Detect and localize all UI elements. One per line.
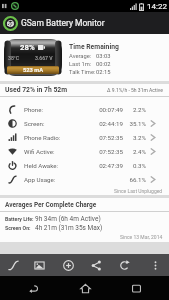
- button[interactable]: Held Awake:: [0, 158, 169, 172]
- staticText: Phone Radio:: [24, 134, 61, 141]
- staticText: Talk Time:: [69, 69, 96, 76]
- staticText: Δ 9.1%/h - 5h 31m Active: [107, 87, 163, 93]
- staticText: 14:22: [147, 2, 167, 11]
- button[interactable]: Add: [57, 254, 79, 276]
- button[interactable]: More options: [144, 254, 166, 276]
- staticText: 03:03: [96, 53, 111, 60]
- staticText: GSam Battery Monitor: [21, 18, 105, 28]
- button[interactable]: Wifi Active:: [0, 144, 169, 158]
- staticText: 2.4%: [120, 148, 146, 155]
- button[interactable]: App Usage:: [0, 172, 169, 186]
- staticText: Held Awake:: [24, 162, 59, 169]
- button[interactable]: Recents: [117, 276, 155, 300]
- staticText: 3.2%: [120, 134, 146, 141]
- staticText: Last 1m:: [69, 61, 92, 68]
- button[interactable]: Phone Radio:: [0, 130, 169, 144]
- staticText: 0.3%: [120, 162, 146, 169]
- staticText: Time Remaining: [69, 43, 119, 51]
- staticText: Battery Life:: [5, 216, 34, 222]
- staticText: 9h 34m (6h 4m Active): [35, 215, 101, 223]
- staticText: 07:52:35: [83, 134, 123, 141]
- staticText: Screen:: [24, 120, 45, 127]
- staticText: 00:02: [96, 61, 111, 68]
- staticText: 02:47:39: [83, 162, 123, 169]
- staticText: Since Last Unplugged: [114, 188, 163, 194]
- staticText: 2.2%: [120, 106, 146, 113]
- staticText: 4h 21m (31m 35s Max): [35, 224, 103, 232]
- button[interactable]: Home: [66, 276, 104, 300]
- staticText: Used 72% in 7h 52m: [5, 86, 68, 94]
- staticText: Wifi Active:: [24, 148, 55, 155]
- button[interactable]: Screenshot: [28, 254, 50, 276]
- staticText: 523 mA: [23, 67, 44, 74]
- button[interactable]: Refresh: [113, 254, 135, 276]
- button[interactable]: Screen:: [0, 116, 169, 130]
- button[interactable]: Back: [14, 276, 52, 300]
- staticText: 38°C: [8, 55, 20, 61]
- staticText: 35.1%: [120, 120, 146, 127]
- staticText: 07:52:35: [83, 148, 123, 155]
- staticText: 3.667 V: [35, 55, 53, 61]
- staticText: Screen On:: [5, 225, 31, 231]
- staticText: Since 13 Mar, 2014: [120, 234, 163, 240]
- staticText: Phone:: [24, 106, 44, 113]
- staticText: 00:07:49: [83, 106, 123, 113]
- staticText: App Usage:: [24, 176, 56, 183]
- staticText: Average:: [69, 53, 92, 60]
- staticText: 02:44:19: [83, 120, 123, 127]
- button[interactable]: Graph: [2, 254, 24, 276]
- staticText: 28%: [20, 43, 35, 52]
- staticText: 02:15: [96, 69, 111, 76]
- staticText: Averages Per Complete Charge: [5, 201, 97, 209]
- button[interactable]: Share: [85, 254, 107, 276]
- staticText: 66.1%: [120, 176, 146, 183]
- staticText: 50: [7, 21, 14, 27]
- button[interactable]: Phone:: [0, 102, 169, 116]
